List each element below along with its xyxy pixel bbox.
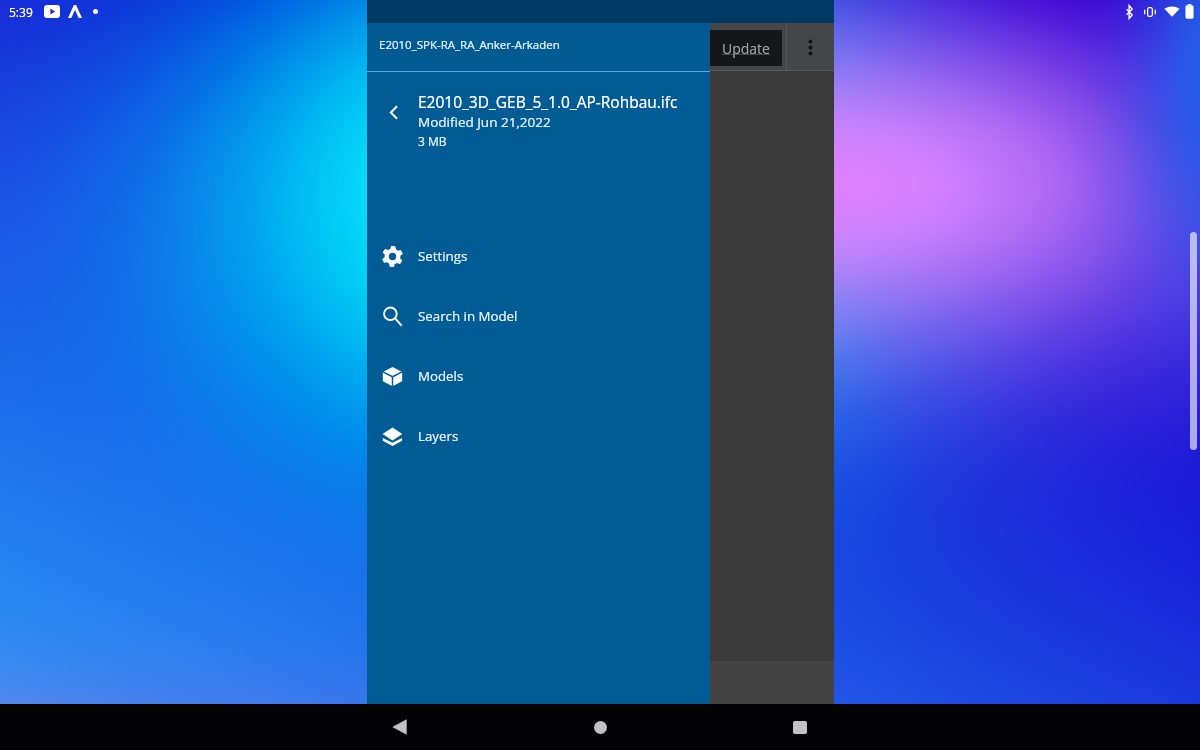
button[interactable]: [367, 23, 710, 71]
button[interactable]: Back: [375, 704, 423, 750]
button[interactable]: Update: [710, 30, 782, 66]
button[interactable]: Settings: [367, 226, 710, 286]
button[interactable]: Recent apps: [776, 704, 824, 750]
staticText: Modified Jun 21,2022: [418, 113, 551, 131]
staticText: Settings: [418, 247, 468, 265]
button[interactable]: Back: [377, 96, 409, 128]
button[interactable]: Home: [576, 704, 624, 750]
button[interactable]: More options: [787, 23, 834, 71]
staticText: Update: [722, 39, 770, 58]
staticText: 3 MB: [418, 133, 447, 149]
button[interactable]: Search in Model: [367, 286, 710, 346]
staticText: Layers: [418, 427, 459, 445]
staticText: 5:39: [9, 4, 33, 20]
staticText: E2010_SPK-RA_RA_Anker-Arkaden: [379, 37, 560, 53]
staticText: Search in Model: [418, 307, 518, 325]
staticText: Models: [418, 367, 464, 385]
button[interactable]: Layers: [367, 406, 710, 466]
staticText: E2010_3D_GEB_5_1.0_AP-Rohbau.ifc: [418, 91, 678, 112]
button[interactable]: Models: [367, 346, 710, 406]
